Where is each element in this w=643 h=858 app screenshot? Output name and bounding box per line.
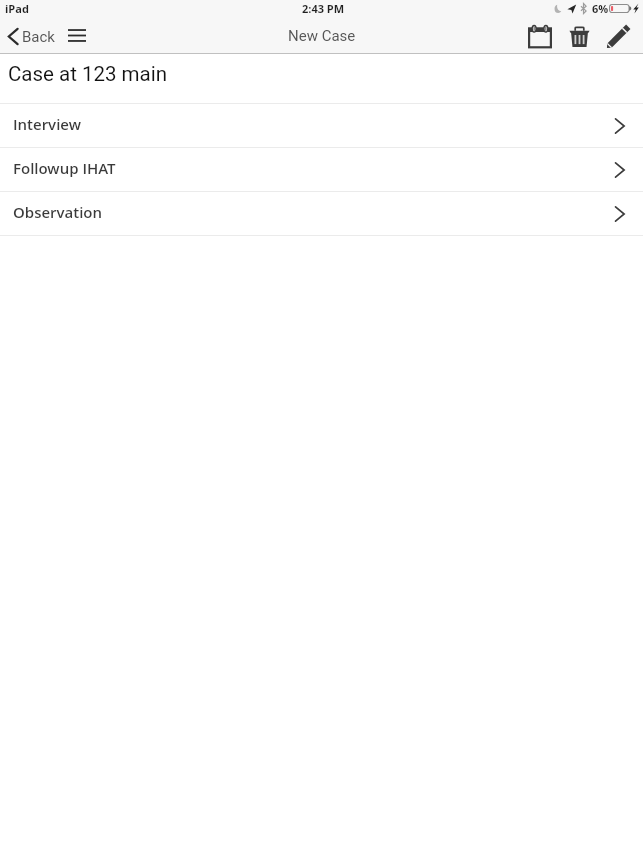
button[interactable]: Edit [602,20,634,53]
button[interactable]: Interview [0,104,643,147]
staticText: Case at 123 main [8,62,168,86]
staticText: 2:43 PM [302,1,345,16]
button[interactable]: Menu [63,19,91,52]
button[interactable]: Calendar [524,20,556,53]
staticText: Observation [13,202,103,222]
staticText: Interview [13,114,81,134]
staticText: Back [22,28,55,46]
button[interactable]: Observation [0,192,643,235]
button[interactable]: Back [8,20,55,53]
button[interactable]: Delete [563,20,595,53]
staticText: 6% [592,1,609,16]
staticText: New Case [288,27,356,45]
staticText: iPad [5,1,29,16]
button[interactable]: Followup IHAT [0,148,643,191]
staticText: Followup IHAT [13,158,116,178]
